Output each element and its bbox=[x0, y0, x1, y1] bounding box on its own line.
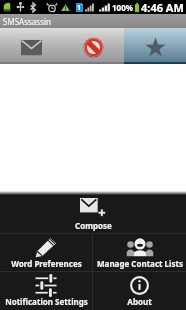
button[interactable]: Notification Settings bbox=[0, 272, 92, 310]
button[interactable]: Word Preferences bbox=[0, 234, 92, 271]
staticText: Word Preferences bbox=[11, 258, 82, 269]
button[interactable]: About bbox=[93, 272, 186, 310]
staticText: SMSAssassin bbox=[3, 16, 51, 27]
staticText: Compose bbox=[75, 220, 112, 231]
staticText: About bbox=[127, 296, 152, 307]
staticText: Notification Settings bbox=[5, 296, 88, 307]
button[interactable]: Compose bbox=[0, 195, 186, 233]
button[interactable]: Manage Contact Lists bbox=[93, 234, 186, 271]
staticText: 4:46 AM bbox=[141, 0, 184, 14]
button[interactable]: Blocked bbox=[62, 28, 124, 64]
staticText: 1 bbox=[77, 3, 82, 12]
button[interactable]: Favorites bbox=[124, 28, 186, 64]
staticText: Manage Contact Lists bbox=[97, 258, 183, 269]
staticText: 100% bbox=[112, 2, 133, 13]
button[interactable]: Inbox bbox=[0, 28, 62, 64]
